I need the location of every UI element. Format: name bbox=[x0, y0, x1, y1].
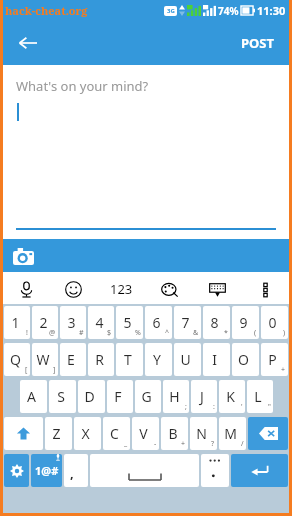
button[interactable]: H bbox=[163, 380, 189, 413]
staticText: 9 bbox=[239, 313, 248, 332]
button[interactable]: 6 bbox=[145, 306, 172, 339]
button[interactable]: I bbox=[203, 343, 230, 376]
staticText: 11:30 bbox=[257, 3, 286, 18]
staticText: I bbox=[212, 350, 217, 369]
staticText: hack-cheat.org bbox=[5, 3, 88, 18]
button[interactable]: T bbox=[116, 343, 143, 376]
button[interactable]: S bbox=[49, 380, 76, 413]
staticText: Y bbox=[153, 350, 161, 369]
staticText: V bbox=[139, 424, 148, 443]
staticText: 1 bbox=[11, 313, 20, 332]
button[interactable]: O bbox=[232, 343, 259, 376]
staticText: E bbox=[67, 350, 75, 369]
button[interactable]: A bbox=[20, 380, 47, 413]
staticText: 2 bbox=[39, 313, 48, 332]
staticText: ' bbox=[241, 402, 243, 412]
button[interactable]: R bbox=[88, 343, 114, 376]
staticText: K bbox=[226, 387, 235, 406]
button[interactable]: Shift bbox=[4, 417, 43, 450]
staticText: ? bbox=[211, 439, 215, 449]
staticText: & bbox=[193, 328, 199, 338]
staticText: ^ bbox=[165, 328, 170, 338]
button[interactable]: E bbox=[60, 343, 86, 376]
staticText: 5 bbox=[123, 313, 132, 332]
button[interactable]: 2 bbox=[32, 306, 58, 339]
staticText: POST bbox=[241, 34, 275, 52]
staticText: W bbox=[36, 350, 50, 369]
staticText: C bbox=[110, 424, 119, 443]
button[interactable]: More options bbox=[241, 274, 289, 304]
button[interactable] bbox=[201, 454, 229, 487]
staticText: @ bbox=[49, 328, 56, 338]
button[interactable]: G bbox=[135, 380, 161, 413]
button[interactable]: J bbox=[191, 380, 217, 413]
button[interactable]: U bbox=[174, 343, 201, 376]
button[interactable]: 0 bbox=[261, 306, 288, 339]
staticText: L bbox=[254, 387, 262, 406]
button[interactable]: Voice input bbox=[3, 274, 50, 304]
button[interactable]: 3 bbox=[60, 306, 86, 339]
button[interactable]: Settings bbox=[4, 454, 29, 487]
button[interactable]: V bbox=[132, 417, 159, 450]
button[interactable]: 9 bbox=[232, 306, 259, 339]
button[interactable]: Space bbox=[90, 454, 199, 487]
button[interactable]: L bbox=[247, 380, 273, 413]
button[interactable]: 1@# bbox=[31, 454, 62, 487]
staticText: ( bbox=[254, 328, 257, 338]
staticText: + bbox=[181, 439, 186, 449]
button[interactable]: Q bbox=[4, 343, 30, 376]
button[interactable]: X bbox=[74, 417, 101, 450]
button[interactable]: Keyboard layout bbox=[193, 274, 241, 304]
button[interactable]: POST bbox=[233, 28, 283, 58]
staticText: - bbox=[154, 439, 157, 449]
button[interactable]: Back bbox=[11, 26, 45, 60]
staticText: : bbox=[213, 402, 215, 412]
staticText: R bbox=[95, 350, 104, 369]
button[interactable]: , bbox=[64, 454, 88, 487]
staticText: , bbox=[70, 464, 74, 482]
button[interactable]: Backspace bbox=[248, 417, 288, 450]
staticText: Z bbox=[52, 424, 61, 443]
staticText: S bbox=[57, 387, 65, 406]
button[interactable]: M bbox=[219, 417, 246, 450]
button[interactable]: 7 bbox=[174, 306, 201, 339]
button[interactable]: N bbox=[190, 417, 217, 450]
staticText: 123 bbox=[110, 280, 133, 298]
button[interactable]: Add photo bbox=[9, 242, 37, 270]
staticText: ! bbox=[26, 328, 28, 338]
staticText: 74% bbox=[218, 4, 239, 18]
button[interactable]: K bbox=[219, 380, 245, 413]
button[interactable]: B bbox=[161, 417, 188, 450]
staticText: 3G bbox=[167, 7, 175, 15]
button[interactable]: 1 bbox=[4, 306, 30, 339]
staticText: J bbox=[200, 387, 204, 406]
staticText: F bbox=[114, 387, 122, 406]
button[interactable]: Themes bbox=[145, 274, 193, 304]
staticText: " bbox=[268, 402, 271, 412]
button[interactable]: 4 bbox=[88, 306, 114, 339]
button[interactable]: Enter bbox=[231, 454, 288, 487]
button[interactable]: C bbox=[103, 417, 130, 450]
staticText: 1@# bbox=[35, 463, 59, 478]
button[interactable]: P bbox=[261, 343, 288, 376]
button[interactable]: 5 bbox=[116, 306, 143, 339]
button[interactable]: W bbox=[32, 343, 58, 376]
button[interactable]: Emoji bbox=[50, 274, 97, 304]
button[interactable]: 8 bbox=[203, 306, 230, 339]
staticText: D bbox=[84, 387, 95, 406]
staticText: ; bbox=[185, 402, 187, 412]
staticText: What's on your mind? bbox=[16, 77, 149, 95]
staticText: U bbox=[180, 350, 191, 369]
staticText: 6 bbox=[152, 313, 161, 332]
staticText: $ bbox=[107, 328, 112, 338]
staticText: M bbox=[224, 424, 237, 443]
button[interactable]: Z bbox=[45, 417, 72, 450]
button[interactable]: D bbox=[78, 380, 105, 413]
button[interactable]: What's on your mind? bbox=[3, 65, 289, 239]
staticText: G bbox=[141, 387, 152, 406]
staticText: + bbox=[281, 365, 286, 375]
button[interactable]: F bbox=[107, 380, 133, 413]
button[interactable]: Y bbox=[145, 343, 172, 376]
button[interactable]: 123 bbox=[97, 274, 145, 304]
staticText: [ bbox=[25, 365, 28, 375]
